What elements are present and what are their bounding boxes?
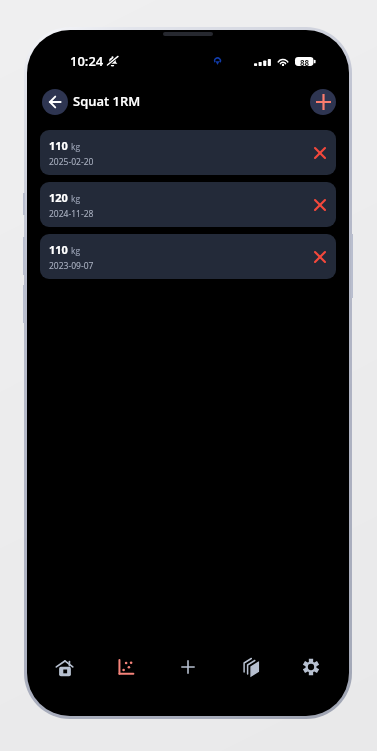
staticText: 120 xyxy=(49,190,68,205)
staticText: 88 xyxy=(300,57,310,66)
button[interactable]: Exercises xyxy=(218,643,280,691)
staticText: 110 xyxy=(49,138,68,153)
button[interactable]: Add xyxy=(156,643,218,691)
button[interactable]: Delete xyxy=(309,194,331,216)
button[interactable]: 120 xyxy=(40,182,336,227)
button[interactable]: Add record xyxy=(310,89,336,115)
button[interactable]: Delete xyxy=(309,142,331,164)
staticText: 10:24 xyxy=(70,52,104,70)
staticText: Squat 1RM xyxy=(73,92,141,110)
staticText: 2024-11-28 xyxy=(49,208,94,220)
button[interactable]: Statistics xyxy=(95,643,156,691)
staticText: kg xyxy=(71,193,81,205)
staticText: kg xyxy=(71,245,81,257)
staticText: kg xyxy=(71,141,81,153)
staticText: 2025-02-20 xyxy=(49,156,94,168)
button[interactable]: Back xyxy=(42,89,68,115)
button[interactable]: Home xyxy=(34,643,95,691)
button[interactable]: 110 xyxy=(40,130,336,175)
button[interactable]: Delete xyxy=(309,246,331,268)
button[interactable]: 110 xyxy=(40,234,336,279)
staticText: 110 xyxy=(49,242,68,257)
staticText: 2023-09-07 xyxy=(49,260,94,272)
button[interactable]: Settings xyxy=(280,643,342,691)
